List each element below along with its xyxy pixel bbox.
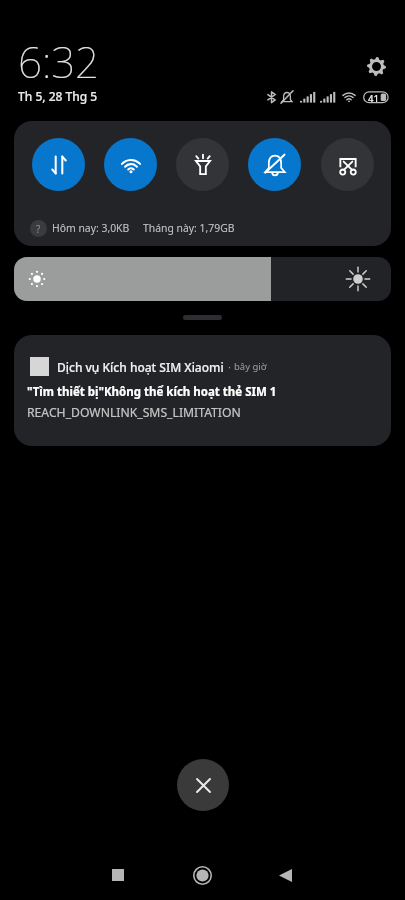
- staticText: REACH_DOWNLINK_SMS_LIMITATION: [27, 404, 241, 421]
- button[interactable]: Wi-Fi: [104, 138, 157, 191]
- button[interactable]: Brightness: [14, 257, 391, 301]
- staticText: bây giờ: [234, 360, 267, 373]
- staticText: ?: [36, 222, 41, 236]
- staticText: 6:32: [18, 33, 100, 90]
- button[interactable]: Flashlight: [176, 138, 229, 191]
- button[interactable]: Settings: [363, 53, 389, 79]
- button[interactable]: Mobile data: [32, 138, 85, 191]
- staticText: ·: [228, 359, 231, 374]
- button[interactable]: Silent mode: [248, 138, 301, 191]
- staticText: Dịch vụ Kích hoạt SIM Xiaomi: [57, 359, 224, 375]
- staticText: Tháng này: 1,79GB: [143, 221, 235, 235]
- button[interactable]: Home: [178, 851, 226, 899]
- button[interactable]: Screen recorder: [321, 138, 374, 191]
- staticText: Th 5, 28 Thg 5: [18, 88, 98, 104]
- button[interactable]: Back: [261, 851, 309, 899]
- staticText: 41: [368, 92, 379, 105]
- button[interactable]: Dịch vụ Kích hoạt SIM Xiaomi: [14, 335, 391, 446]
- button[interactable]: Clear all notifications: [177, 759, 229, 811]
- button[interactable]: Recents: [94, 851, 142, 899]
- staticText: Hôm nay: 3,0KB: [52, 221, 130, 235]
- staticText: "Tìm thiết bị"Không thể kích hoạt thẻ SI…: [27, 384, 277, 400]
